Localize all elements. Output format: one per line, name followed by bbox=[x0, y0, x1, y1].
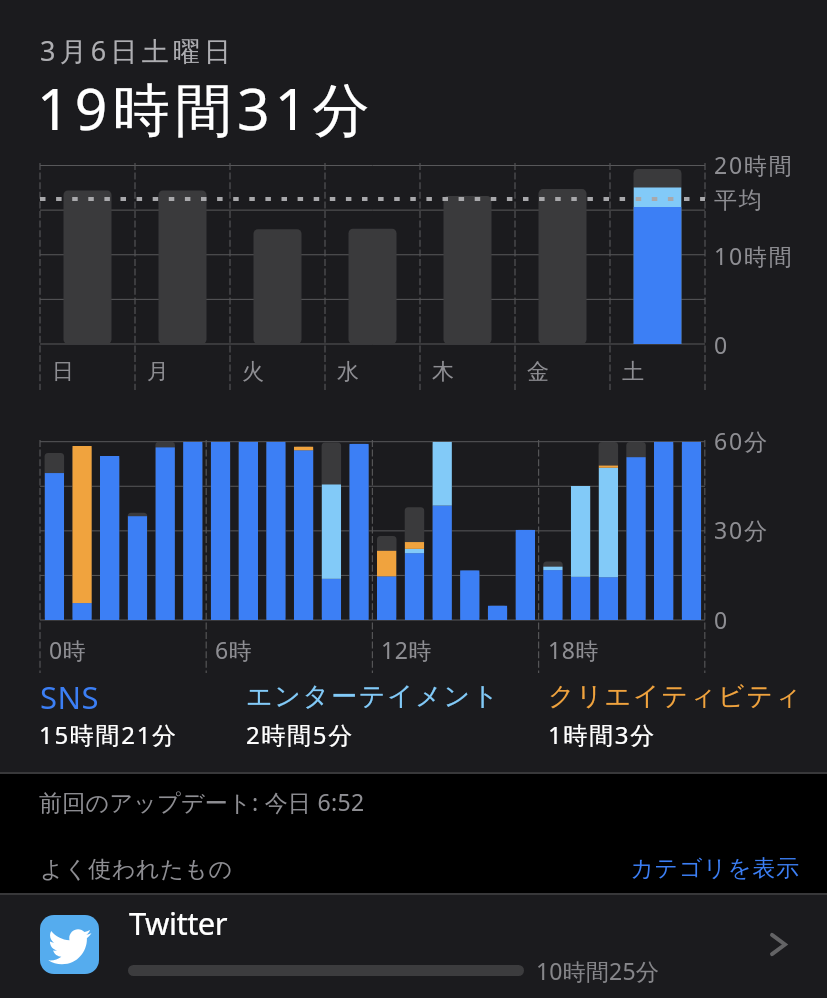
staticText: SNS bbox=[40, 676, 100, 718]
staticText: 10時間25分 bbox=[536, 955, 660, 986]
staticText: 0 bbox=[714, 604, 729, 635]
staticText: 30分 bbox=[714, 514, 769, 545]
staticText: 金 bbox=[527, 358, 549, 386]
staticText: 土 bbox=[622, 358, 644, 386]
button[interactable]: カテゴリを表示 bbox=[630, 845, 800, 891]
staticText: 3月6日土曜日 bbox=[40, 32, 236, 69]
staticText: 2時間5分 bbox=[246, 718, 354, 751]
staticText: 1時間3分 bbox=[548, 718, 656, 751]
staticText: 19時間31分 bbox=[37, 69, 375, 147]
other: Show Twitter details bbox=[756, 922, 801, 967]
staticText: 水 bbox=[337, 358, 359, 386]
staticText: 平均 bbox=[714, 186, 764, 215]
staticText: 火 bbox=[242, 358, 264, 386]
staticText: エンターテイメント bbox=[246, 680, 501, 713]
staticText: 12時 bbox=[381, 634, 433, 665]
staticText: クリエイティビティ bbox=[548, 680, 803, 713]
staticText: よく使われたもの bbox=[40, 855, 233, 884]
staticText: 18時 bbox=[548, 634, 600, 665]
staticText: 0時 bbox=[49, 634, 87, 665]
staticText: 木 bbox=[432, 358, 454, 386]
staticText: カテゴリを表示 bbox=[630, 854, 800, 883]
staticText: 前回のアップデート: 今日 6:52 bbox=[39, 786, 365, 817]
button[interactable]: Twitter bbox=[0, 895, 827, 998]
staticText: 15時間21分 bbox=[39, 718, 178, 751]
staticText: 0 bbox=[714, 329, 729, 360]
staticText: 60分 bbox=[714, 425, 769, 456]
staticText: 10時間 bbox=[714, 240, 794, 271]
staticText: 日 bbox=[52, 358, 74, 386]
staticText: 20時間 bbox=[714, 149, 794, 180]
staticText: 6時 bbox=[215, 634, 253, 665]
staticText: Twitter bbox=[129, 902, 228, 944]
staticText: 月 bbox=[147, 358, 169, 386]
